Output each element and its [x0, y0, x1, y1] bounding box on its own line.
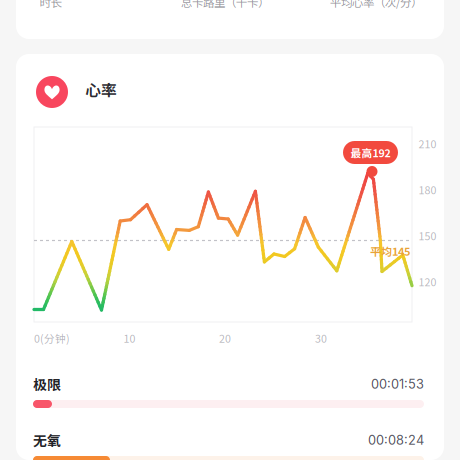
button[interactable]: 最高192: [343, 141, 398, 164]
staticText: 180: [418, 182, 436, 197]
staticText: 210: [418, 136, 436, 151]
button[interactable]: 极限: [33, 376, 424, 410]
staticText: 20: [219, 330, 231, 346]
staticText: 时长: [39, 0, 61, 10]
staticText: 平均145: [370, 243, 410, 259]
staticText: 150: [418, 228, 436, 243]
staticText: 10: [123, 330, 135, 346]
staticText: 总卡路里（千卡）: [181, 0, 269, 10]
staticText: 极限: [33, 374, 61, 394]
staticText: 00:01:53: [371, 376, 424, 392]
staticText: 120: [418, 274, 436, 289]
button[interactable]: 心率: [36, 76, 426, 108]
staticText: 0(分钟): [34, 330, 70, 346]
staticText: 00:08:24: [368, 432, 424, 448]
staticText: 30: [315, 330, 327, 346]
staticText: 心率: [85, 78, 117, 101]
staticText: 最高192: [350, 145, 390, 160]
button[interactable]: 无氧: [33, 432, 424, 460]
staticText: 无氧: [33, 430, 61, 450]
staticText: 平均心率（次/分）: [330, 0, 422, 10]
